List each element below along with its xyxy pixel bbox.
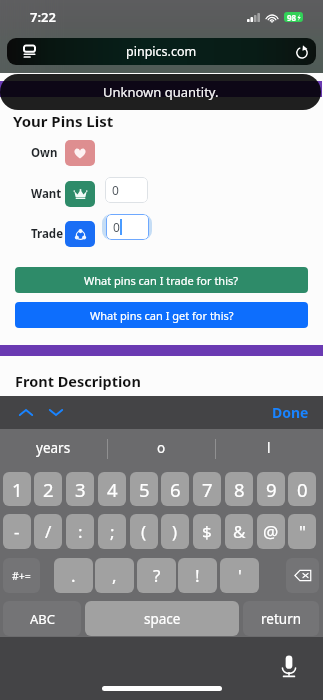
staticText: 0 <box>113 219 120 235</box>
button[interactable]: ? <box>137 558 176 593</box>
staticText: 5 <box>139 477 150 502</box>
staticText: What pins can I trade for this? <box>84 273 239 288</box>
staticText: Want <box>31 186 62 202</box>
button[interactable]: 4 <box>98 472 126 506</box>
button[interactable]: ' <box>220 558 259 593</box>
button[interactable]: What pins can I get for this? <box>15 302 308 328</box>
staticText: 0 <box>297 477 308 502</box>
button[interactable]: & <box>225 514 253 549</box>
button[interactable]: o <box>107 429 215 467</box>
staticText: ' <box>238 564 242 587</box>
button[interactable]: Next field <box>42 396 70 429</box>
staticText: Your Pins List <box>13 111 114 131</box>
button[interactable]: 3 <box>66 472 94 506</box>
staticText: ( <box>141 520 147 543</box>
staticText: 0 <box>112 182 119 198</box>
button[interactable]: Previous field <box>12 396 40 429</box>
staticText: ; <box>110 520 115 543</box>
staticText: ? <box>153 564 161 587</box>
staticText: 8 <box>234 477 245 502</box>
button[interactable]: 0 <box>105 177 148 203</box>
button[interactable]: Dictation <box>281 655 297 678</box>
staticText: space <box>144 610 181 628</box>
button[interactable]: ! <box>178 558 217 593</box>
staticText: 6 <box>170 477 181 502</box>
button[interactable]: l <box>215 429 323 467</box>
button[interactable]: ABC <box>3 601 81 636</box>
staticText: 7 <box>202 477 213 502</box>
button[interactable]: . <box>54 558 93 593</box>
staticText: ) <box>172 520 178 543</box>
staticText: 2 <box>43 477 54 502</box>
button[interactable]: / <box>34 514 62 549</box>
staticText: o <box>157 439 166 457</box>
staticText: 3 <box>75 477 86 502</box>
staticText: 7:22 <box>30 8 56 26</box>
staticText: return <box>261 610 302 628</box>
staticText: $ <box>202 520 212 543</box>
staticText: 4 <box>107 477 118 502</box>
button[interactable]: " <box>288 514 316 549</box>
button[interactable]: What pins can I trade for this? <box>15 267 308 293</box>
staticText: - <box>14 520 20 543</box>
button[interactable]: 0 <box>288 472 316 506</box>
staticText: , <box>112 564 117 587</box>
staticText: 1 <box>12 477 23 502</box>
button[interactable]: : <box>66 514 94 549</box>
button[interactable]: Own <box>65 140 95 166</box>
button[interactable]: years <box>0 429 107 467</box>
staticText: 9 <box>266 477 277 502</box>
staticText: years <box>36 439 71 457</box>
button[interactable]: @ <box>257 514 285 549</box>
button[interactable]: ) <box>161 514 189 549</box>
staticText: / <box>45 520 52 543</box>
button[interactable]: $ <box>193 514 221 549</box>
staticText: " <box>299 520 306 543</box>
staticText: 98 <box>287 12 297 22</box>
staticText: Done <box>272 403 309 422</box>
staticText: Own <box>31 145 58 161</box>
button[interactable]: 2 <box>34 472 62 506</box>
button[interactable]: , <box>95 558 134 593</box>
button[interactable]: ; <box>98 514 126 549</box>
button[interactable]: return <box>243 601 319 636</box>
staticText: Trade <box>31 226 63 242</box>
staticText: ! <box>195 564 200 587</box>
button[interactable]: 0 <box>102 214 152 240</box>
button[interactable]: 8 <box>225 472 253 506</box>
button[interactable]: Backspace <box>286 558 319 593</box>
staticText: . <box>71 564 76 587</box>
staticText: @ <box>263 520 279 543</box>
staticText: : <box>78 520 83 543</box>
staticText: & <box>233 520 246 543</box>
button[interactable]: 5 <box>130 472 158 506</box>
staticText: Front Description <box>15 371 141 391</box>
button[interactable]: Want <box>65 181 95 207</box>
button[interactable]: ( <box>130 514 158 549</box>
button[interactable]: 1 <box>3 472 31 506</box>
staticText: l <box>267 439 271 457</box>
button[interactable]: 7 <box>193 472 221 506</box>
staticText: pinpics.com <box>126 43 197 60</box>
button[interactable]: Reload <box>288 38 316 65</box>
staticText: #+= <box>12 569 31 583</box>
staticText: ABC <box>30 610 55 628</box>
button[interactable]: 6 <box>161 472 189 506</box>
staticText: Unknown quantity. <box>103 83 219 101</box>
button[interactable]: Done <box>258 396 323 429</box>
staticText: What pins can I get for this? <box>90 308 234 323</box>
button[interactable]: space <box>85 601 239 636</box>
button[interactable]: - <box>3 514 31 549</box>
button[interactable]: #+= <box>3 558 40 593</box>
button[interactable]: 9 <box>257 472 285 506</box>
button[interactable]: Page settings <box>15 38 43 65</box>
button[interactable]: Trade <box>65 221 95 247</box>
